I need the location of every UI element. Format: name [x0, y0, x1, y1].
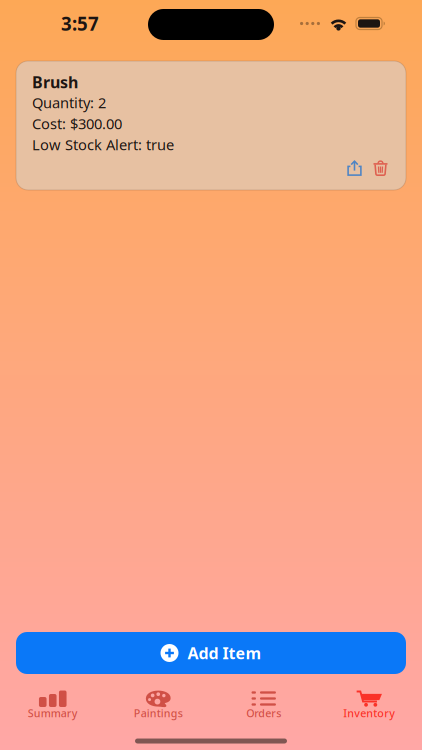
staticText: 3:57 [61, 11, 99, 36]
staticText: Paintings [134, 706, 183, 720]
button[interactable]: Orders [211, 674, 316, 732]
staticText: Orders [246, 706, 281, 720]
staticText: Cost: $300.00 [32, 114, 122, 133]
button[interactable]: Summary [0, 674, 105, 732]
staticText: Brush [32, 71, 78, 93]
staticText: Add Item [187, 642, 261, 664]
staticText: Low Stock Alert: true [32, 135, 174, 154]
button[interactable]: Paintings [105, 674, 211, 732]
button[interactable]: Share [347, 160, 362, 176]
staticText: Inventory [343, 706, 395, 720]
staticText: Summary [28, 706, 78, 720]
staticText: Quantity: 2 [32, 93, 106, 112]
button[interactable]: Add Item [16, 632, 406, 674]
button[interactable]: Delete [373, 160, 388, 176]
button[interactable]: Inventory [316, 674, 422, 732]
